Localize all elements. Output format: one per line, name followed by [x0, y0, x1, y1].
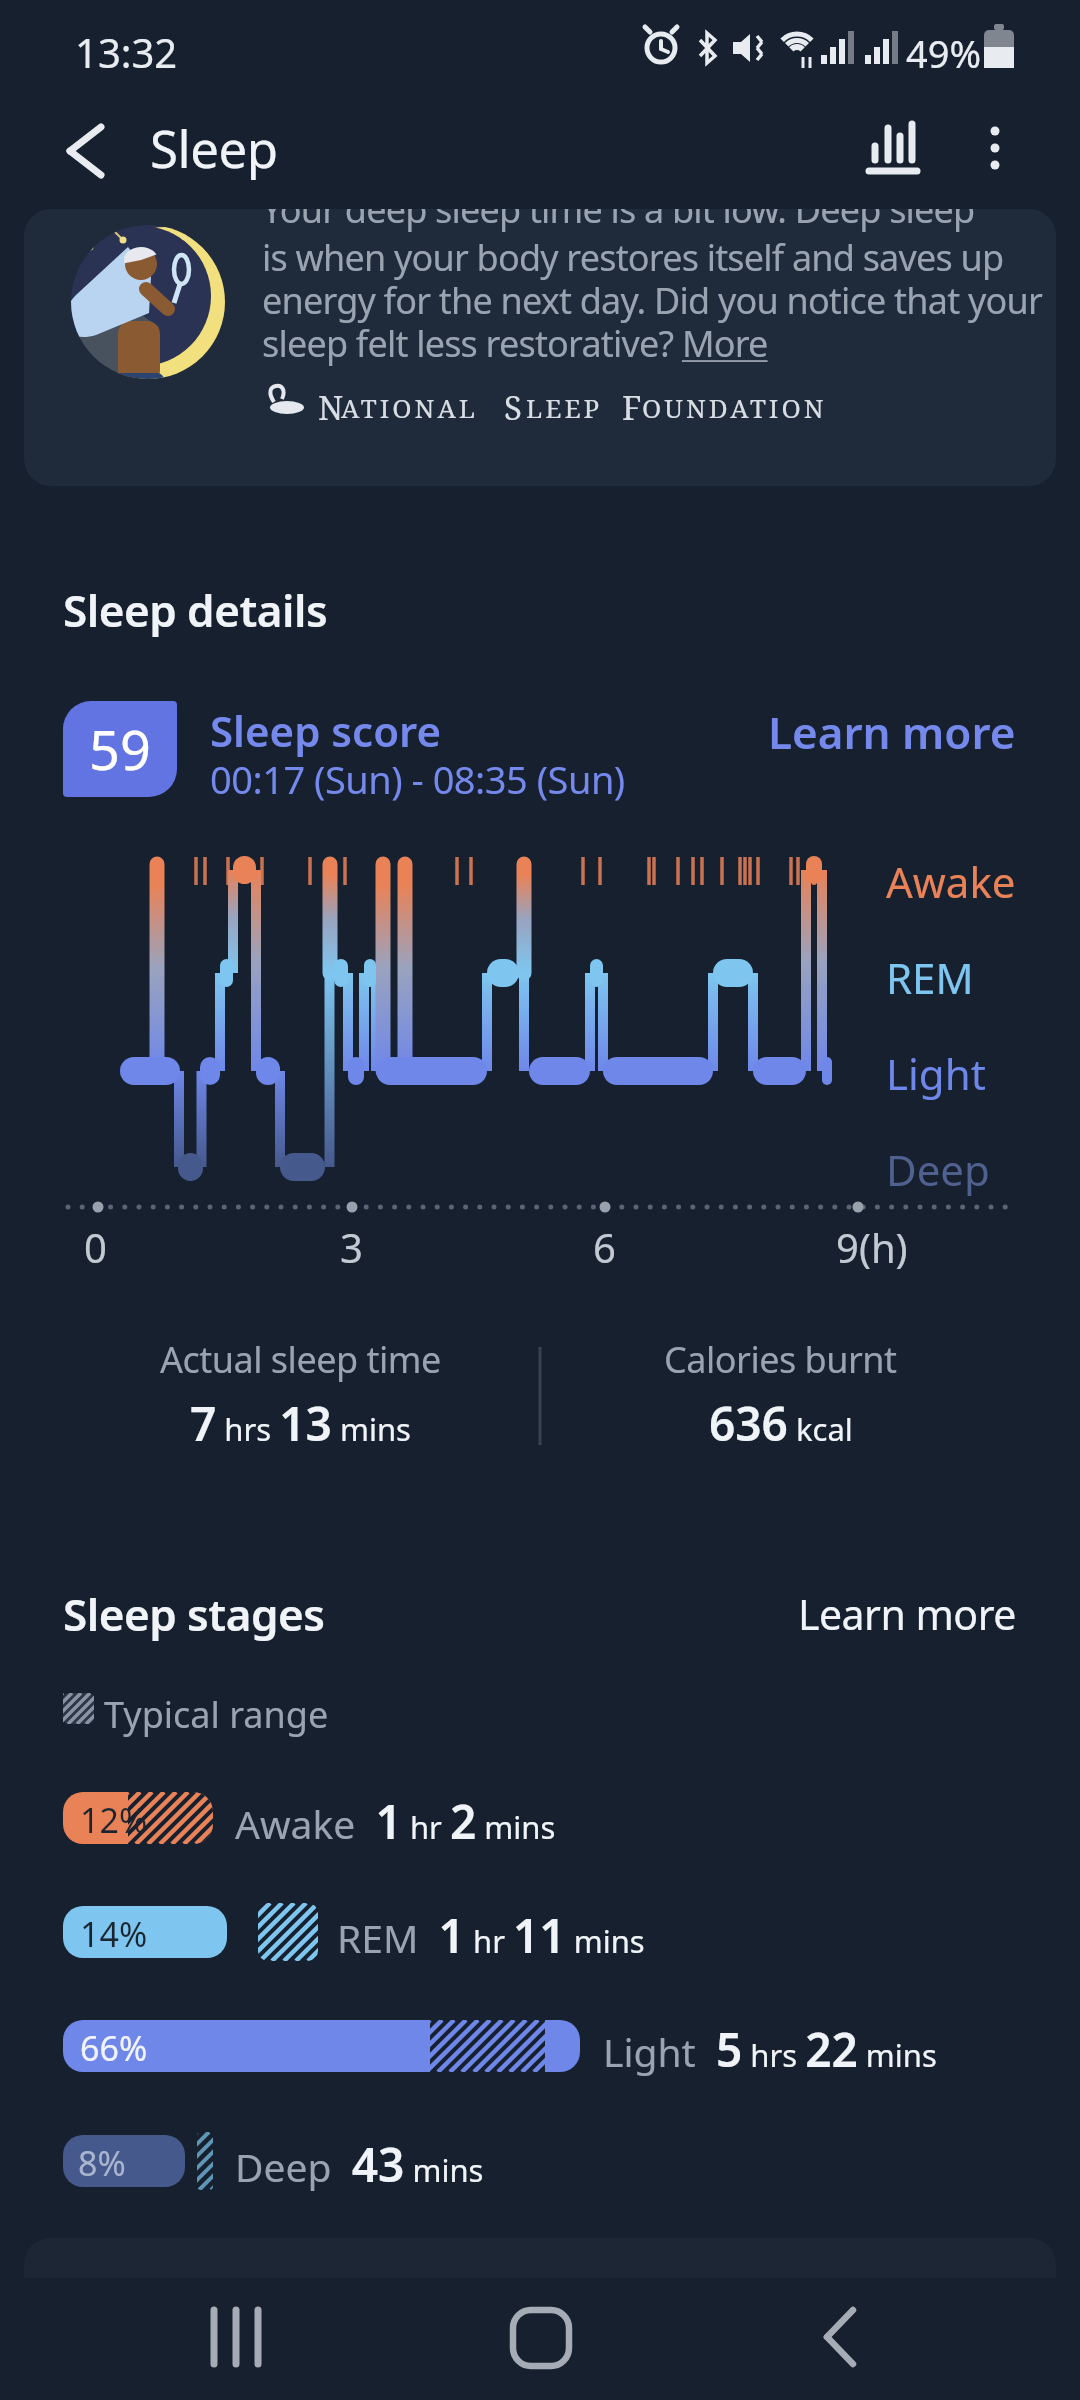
button[interactable] [40, 110, 120, 190]
staticText: F [622, 385, 642, 430]
staticText: 12% [80, 1797, 148, 1843]
staticText: Deep 43 mins [235, 2133, 484, 2196]
staticText: REM [886, 949, 974, 1006]
staticText: Learn more [798, 1586, 1016, 1642]
staticText: Sleep [150, 113, 278, 182]
staticText: 0 [84, 1220, 107, 1274]
staticText: 00:17 (Sun) - 08:35 (Sun) [210, 753, 625, 805]
staticText: sleep felt less restorative? More [262, 319, 768, 368]
staticText: 14% [80, 1911, 148, 1957]
staticText: Deep [886, 1141, 990, 1198]
staticText: 49% [906, 27, 982, 79]
staticText: Actual sleep time [160, 1335, 441, 1384]
button[interactable]: Learn more [0, 702, 1016, 762]
staticText: Calories burnt [664, 1335, 897, 1384]
staticText: 636 kcal [709, 1392, 853, 1455]
button[interactable]: Your deep sleep time is a bit low. Deep … [24, 209, 1056, 486]
staticText: Light [886, 1045, 986, 1102]
staticText: Light 5 hrs 22 mins [603, 2018, 937, 2081]
staticText: 13:32 [75, 25, 178, 79]
staticText: REM 1 hr 11 mins [337, 1904, 645, 1967]
staticText: Your deep sleep time is a bit low. Deep … [262, 209, 975, 234]
staticText: energy for the next day. Did you notice … [262, 276, 1042, 325]
button[interactable] [850, 110, 935, 190]
staticText: 6 [593, 1220, 616, 1274]
button[interactable]: Learn more [0, 1586, 1016, 1642]
staticText: Sleep details [63, 580, 328, 640]
staticText: 7 hrs 13 mins [190, 1392, 411, 1455]
staticText: Awake [886, 853, 1016, 910]
staticText: ATIONAL [341, 390, 478, 425]
staticText: N [318, 385, 344, 430]
staticText: is when your body restores itself and sa… [262, 233, 1004, 282]
button[interactable]: 59 [63, 701, 177, 797]
staticText: 9(h) [836, 1220, 908, 1274]
staticText: Sleep stages [63, 1584, 325, 1644]
staticText: 59 [89, 712, 151, 786]
staticText: S [504, 385, 522, 430]
staticText: LEEP [526, 390, 603, 425]
staticText: OUNDATION [642, 390, 827, 425]
button[interactable] [960, 110, 1030, 190]
staticText: Awake 1 hr 2 mins [235, 1790, 556, 1853]
staticText: 66% [80, 2025, 148, 2071]
staticText: Sleep score [210, 702, 442, 759]
staticText: 8% [78, 2140, 126, 2186]
staticText: 3 [340, 1220, 363, 1274]
staticText: Typical range [104, 1690, 329, 1739]
staticText: Learn more [768, 702, 1016, 762]
